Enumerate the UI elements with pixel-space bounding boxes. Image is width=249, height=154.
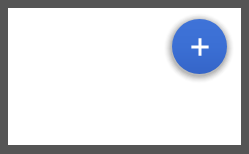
button[interactable]: Add <box>172 19 227 74</box>
